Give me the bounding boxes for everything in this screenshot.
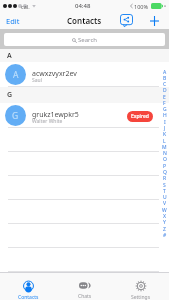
staticText: # (163, 232, 167, 239)
staticText: Search (78, 36, 97, 44)
staticText: P (163, 163, 167, 170)
staticText: X (163, 213, 167, 220)
staticText: I (164, 119, 166, 126)
staticText: acwxzvyxr2ev (32, 69, 77, 79)
button[interactable]: Search (4, 33, 165, 46)
staticText: Contacts (67, 15, 102, 26)
staticText: Contacts (18, 294, 39, 300)
staticText: Saul (32, 77, 42, 84)
staticText: G (12, 110, 19, 122)
staticText: A (7, 51, 12, 61)
staticText: W (162, 207, 167, 214)
staticText: H (163, 112, 167, 119)
staticText: A (13, 69, 19, 81)
staticText: O (163, 156, 167, 163)
staticText: 04:48 (75, 2, 91, 10)
button[interactable]: Add contact (145, 12, 163, 29)
staticText: R (163, 175, 167, 182)
button[interactable]: Contacts (0, 273, 57, 300)
button[interactable]: G (0, 103, 169, 128)
staticText: Q (163, 169, 167, 176)
staticText: F (163, 100, 166, 107)
button[interactable]: Share (117, 12, 136, 29)
staticText: T (163, 188, 166, 195)
staticText: Edit (6, 16, 20, 26)
staticText: 100% (134, 3, 149, 10)
staticText: D (163, 87, 167, 94)
button[interactable]: Settings (113, 273, 169, 300)
staticText: cal. (21, 3, 30, 10)
staticText: B (163, 75, 167, 82)
button[interactable]: Alphabet index (160, 49, 169, 272)
staticText: J (164, 125, 166, 132)
staticText: V (163, 200, 167, 207)
staticText: M (162, 144, 167, 151)
staticText: grukz1ewpkr5 (32, 110, 79, 120)
staticText: Z (163, 226, 166, 233)
staticText: K (163, 131, 167, 138)
staticText: Settings (131, 294, 151, 300)
staticText: L (163, 138, 166, 145)
staticText: Walter White (32, 118, 63, 125)
button[interactable]: A (0, 62, 169, 87)
staticText: U (163, 194, 167, 201)
staticText: A (163, 69, 167, 76)
staticText: C (163, 81, 167, 88)
button[interactable]: Edit (0, 12, 26, 29)
staticText: G (7, 90, 13, 100)
staticText: Chats (78, 293, 92, 300)
button[interactable]: Chats (57, 273, 113, 300)
staticText: Y (163, 219, 166, 226)
staticText: S (163, 182, 166, 189)
staticText: G (163, 106, 167, 113)
staticText: E (163, 94, 166, 101)
staticText: Expired (131, 113, 149, 120)
staticText: N (163, 150, 167, 157)
